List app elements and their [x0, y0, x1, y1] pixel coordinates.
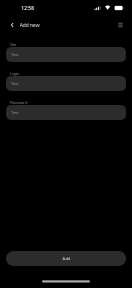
staticText: Test: [11, 110, 18, 115]
button[interactable]: Add new: [11, 21, 40, 29]
staticText: Site: [10, 42, 16, 47]
staticText: Login: [10, 71, 19, 76]
staticText: Test: [11, 52, 18, 57]
button[interactable]: Add: [6, 251, 126, 266]
button[interactable]: Test: [6, 105, 126, 120]
staticText: 12:58: [21, 4, 34, 12]
staticText: Add new: [20, 21, 40, 29]
staticText: Password: [10, 100, 27, 105]
button[interactable]: Test: [6, 76, 126, 91]
button[interactable]: Test: [6, 47, 126, 62]
staticText: Test: [11, 81, 18, 86]
button[interactable]: Menu: [115, 19, 126, 30]
staticText: Add: [62, 256, 69, 261]
